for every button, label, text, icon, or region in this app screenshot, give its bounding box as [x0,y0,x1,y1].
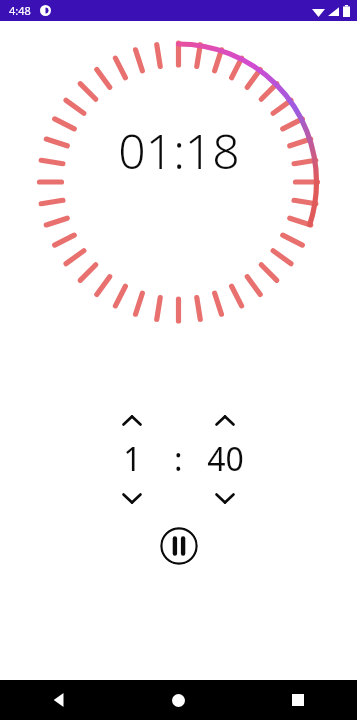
staticText: 1 [123,437,142,481]
button[interactable]: Back [0,680,119,720]
staticText: 4:48 [9,3,31,18]
staticText: : [174,437,183,481]
button[interactable]: Increase seconds [203,407,247,433]
staticText: 01:18 [118,118,240,183]
button[interactable]: Recent apps [238,680,357,720]
button[interactable]: Pause [160,527,198,565]
button[interactable]: Increase minutes [110,407,154,433]
button[interactable]: Home [119,680,238,720]
button[interactable]: Decrease seconds [203,485,247,511]
button[interactable]: Decrease minutes [110,485,154,511]
staticText: 40 [207,437,244,481]
